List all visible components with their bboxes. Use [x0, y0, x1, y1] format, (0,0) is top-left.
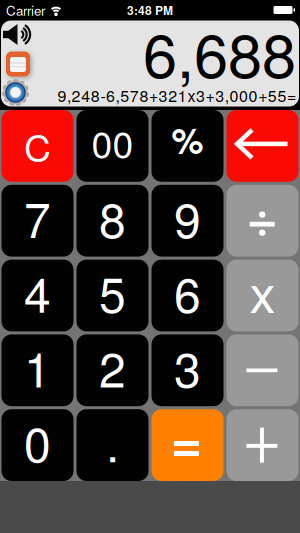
staticText: 4	[24, 258, 51, 326]
button[interactable]: .	[76, 409, 148, 481]
staticText: 00	[91, 116, 133, 169]
staticText: 6	[174, 258, 201, 326]
button[interactable]: 1	[1, 334, 73, 406]
staticText: 0	[24, 407, 51, 476]
button[interactable]: History	[6, 51, 30, 76]
button[interactable]: Minus	[226, 334, 298, 406]
button[interactable]: 5	[76, 260, 148, 331]
button[interactable]: Backspace	[226, 110, 298, 182]
button[interactable]: Plus	[226, 409, 298, 481]
button[interactable]: Sound	[3, 24, 30, 45]
button[interactable]: 4	[1, 260, 73, 331]
button[interactable]: 0	[1, 409, 73, 481]
staticText: .	[106, 407, 119, 476]
staticText: 3	[174, 332, 201, 401]
staticText: 7	[24, 183, 51, 251]
button[interactable]: Settings	[1, 79, 30, 106]
staticText: C	[24, 119, 51, 173]
button[interactable]: %	[151, 110, 223, 182]
staticText: 6,688	[143, 8, 296, 95]
staticText: 8	[99, 183, 126, 251]
button[interactable]: Equals	[151, 409, 223, 481]
button[interactable]: 8	[76, 185, 148, 257]
button[interactable]: C	[1, 110, 73, 182]
button[interactable]: 9	[151, 185, 223, 257]
staticText: %	[171, 114, 203, 165]
button[interactable]: 6	[151, 260, 223, 331]
staticText: 9,248-6,578+321x3+3,000+55=	[57, 83, 296, 106]
button[interactable]: 00	[76, 110, 148, 182]
staticText: 5	[99, 258, 126, 326]
button[interactable]: Divide	[226, 185, 298, 257]
button[interactable]: 2	[76, 334, 148, 406]
staticText: x	[249, 253, 275, 328]
button[interactable]: 7	[1, 185, 73, 257]
button[interactable]: 3	[151, 334, 223, 406]
staticText: 3:48 PM	[127, 1, 173, 19]
staticText: 1	[24, 332, 51, 401]
staticText: Carrier	[6, 0, 45, 20]
staticText: 9	[174, 183, 201, 251]
staticText: 2	[99, 332, 126, 401]
button[interactable]: x	[226, 260, 298, 331]
